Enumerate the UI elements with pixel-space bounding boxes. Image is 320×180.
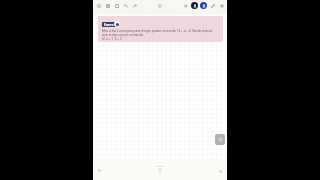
button[interactable]: Refresh bbox=[94, 0, 103, 11]
button[interactable]: Image bbox=[112, 0, 121, 11]
button[interactable]: Profile bbox=[190, 0, 199, 11]
button[interactable]: History bbox=[155, 0, 164, 11]
staticText: Exerc 1 bbox=[104, 22, 117, 27]
button[interactable]: Previous page bbox=[98, 169, 101, 172]
staticText: Mas o dia 2 esta para para chegar possui… bbox=[102, 29, 213, 33]
staticText: a) x + 1, 2 + 3 bbox=[102, 37, 122, 41]
staticText: pois tempo ai pois conteudo bbox=[102, 33, 144, 37]
button[interactable]: Redo bbox=[130, 0, 139, 11]
button[interactable]: Scroll handle bbox=[215, 134, 225, 145]
button[interactable]: Share bbox=[208, 0, 217, 11]
button[interactable]: Apps bbox=[217, 0, 226, 11]
button[interactable]: Page tools bbox=[155, 165, 165, 173]
button[interactable]: Present bbox=[181, 0, 190, 11]
button[interactable]: Exerc 1 bbox=[98, 16, 223, 42]
button[interactable]: Undo bbox=[121, 0, 130, 11]
button[interactable]: Next page bbox=[219, 170, 222, 173]
button[interactable]: Grid bbox=[103, 0, 112, 11]
button[interactable]: Profile bbox=[199, 0, 208, 11]
